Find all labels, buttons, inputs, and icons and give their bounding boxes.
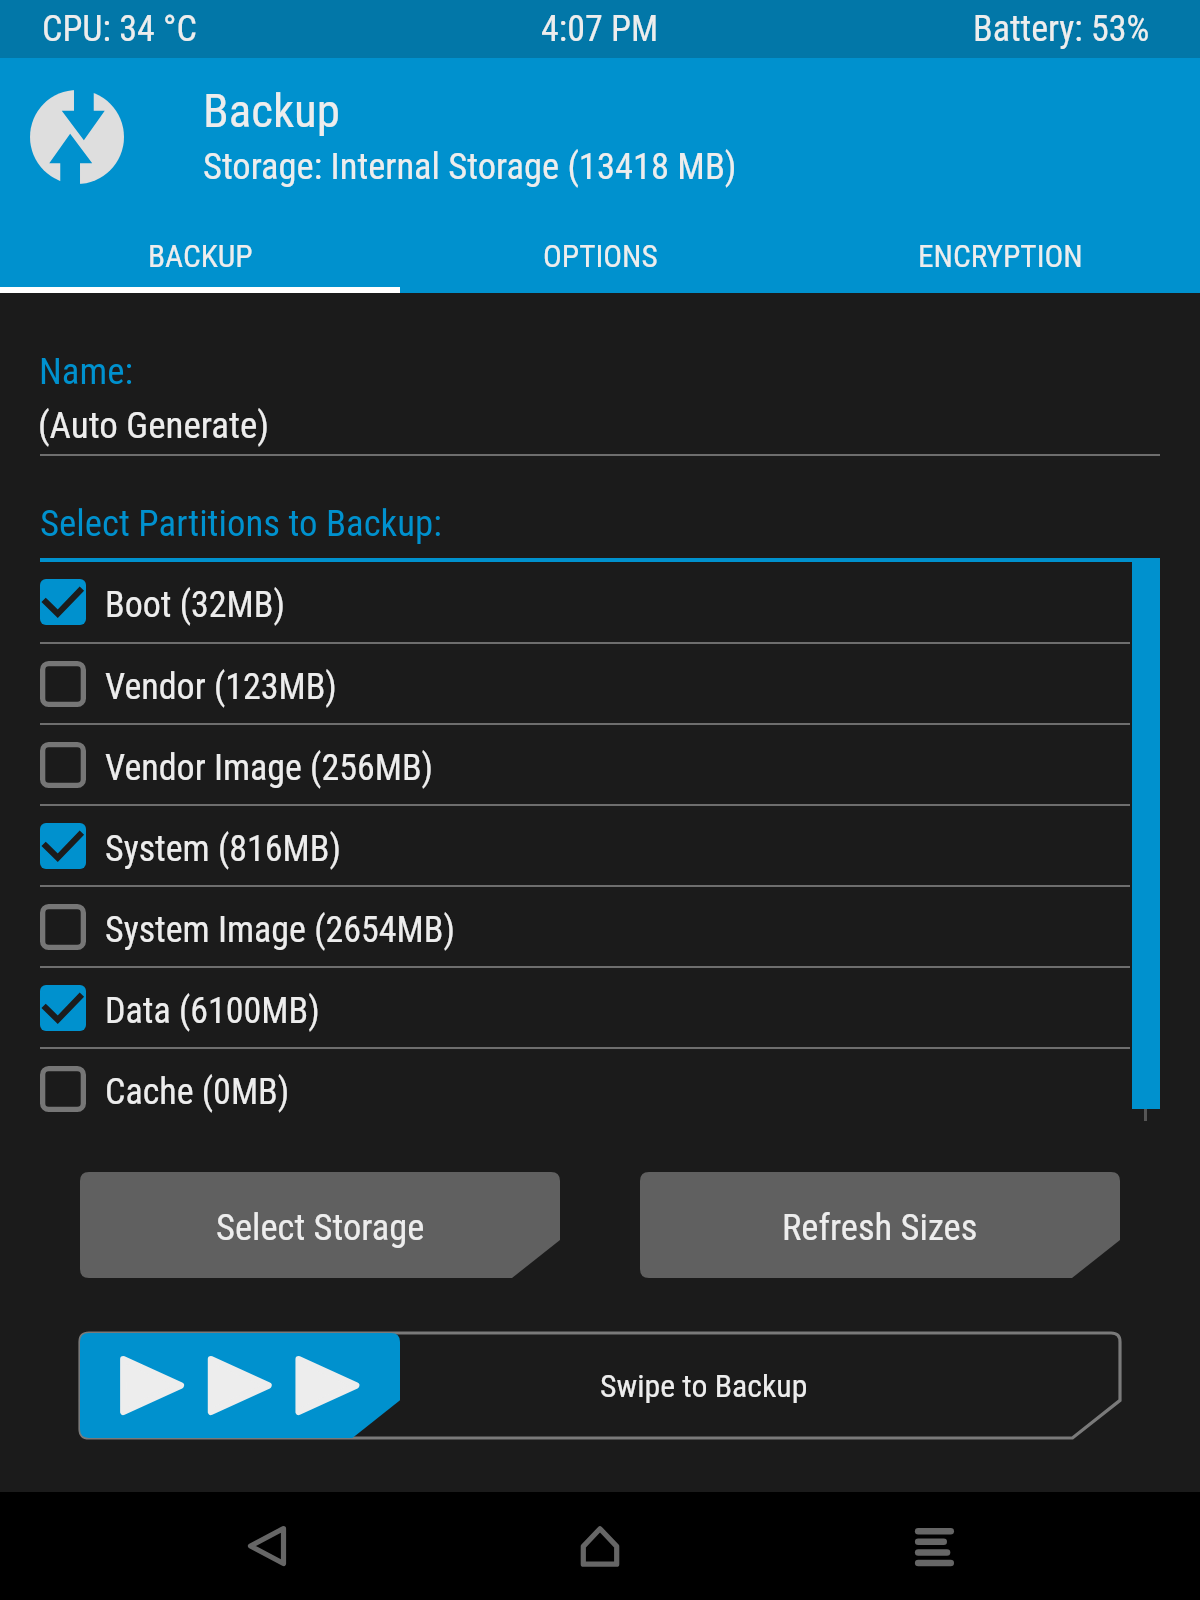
staticText: ENCRYPTION — [918, 238, 1083, 275]
button[interactable]: OPTIONS — [400, 205, 800, 293]
staticText: Swipe to Backup — [600, 1367, 808, 1404]
staticText: Battery: 53% — [973, 8, 1150, 50]
button[interactable]: Boot (32MB) — [0, 561, 1200, 642]
button[interactable]: Vendor Image (256MB) — [0, 725, 1200, 804]
button[interactable]: BACKUP — [0, 205, 400, 293]
staticText: CPU: 34 °C — [42, 8, 197, 50]
staticText: (Auto Generate) — [38, 404, 270, 447]
button[interactable]: Data (6100MB) — [0, 968, 1200, 1047]
staticText: System (816MB) — [105, 828, 341, 870]
staticText: BACKUP — [148, 238, 253, 275]
staticText: Refresh Sizes — [782, 1206, 978, 1249]
button[interactable]: Back — [207, 1492, 327, 1600]
button[interactable]: Cache (0MB) — [0, 1049, 1200, 1128]
button[interactable]: Home — [540, 1492, 660, 1600]
button[interactable]: System (816MB) — [0, 806, 1200, 885]
staticText: Storage: Internal Storage (13418 MB) — [203, 145, 737, 188]
button[interactable]: System Image (2654MB) — [0, 887, 1200, 966]
button[interactable]: Swipe to Backup — [80, 1333, 1120, 1438]
button[interactable]: Vendor (123MB) — [0, 644, 1200, 723]
staticText: Boot (32MB) — [105, 584, 285, 626]
staticText: 4:07 PM — [541, 8, 659, 50]
staticText: Backup — [203, 83, 340, 138]
staticText: Vendor Image (256MB) — [105, 747, 434, 789]
staticText: Data (6100MB) — [105, 990, 320, 1032]
button[interactable]: Select Storage — [80, 1172, 560, 1278]
button[interactable]: ENCRYPTION — [800, 205, 1200, 293]
staticText: Name: — [39, 350, 133, 393]
staticText: System Image (2654MB) — [105, 909, 455, 951]
staticText: Cache (0MB) — [105, 1071, 290, 1113]
button[interactable]: Recent apps — [873, 1492, 993, 1600]
staticText: Vendor (123MB) — [105, 666, 337, 708]
staticText: Select Partitions to Backup: — [40, 502, 442, 545]
staticText: Select Storage — [216, 1206, 425, 1249]
button[interactable]: Refresh Sizes — [640, 1172, 1120, 1278]
staticText: OPTIONS — [543, 238, 658, 275]
